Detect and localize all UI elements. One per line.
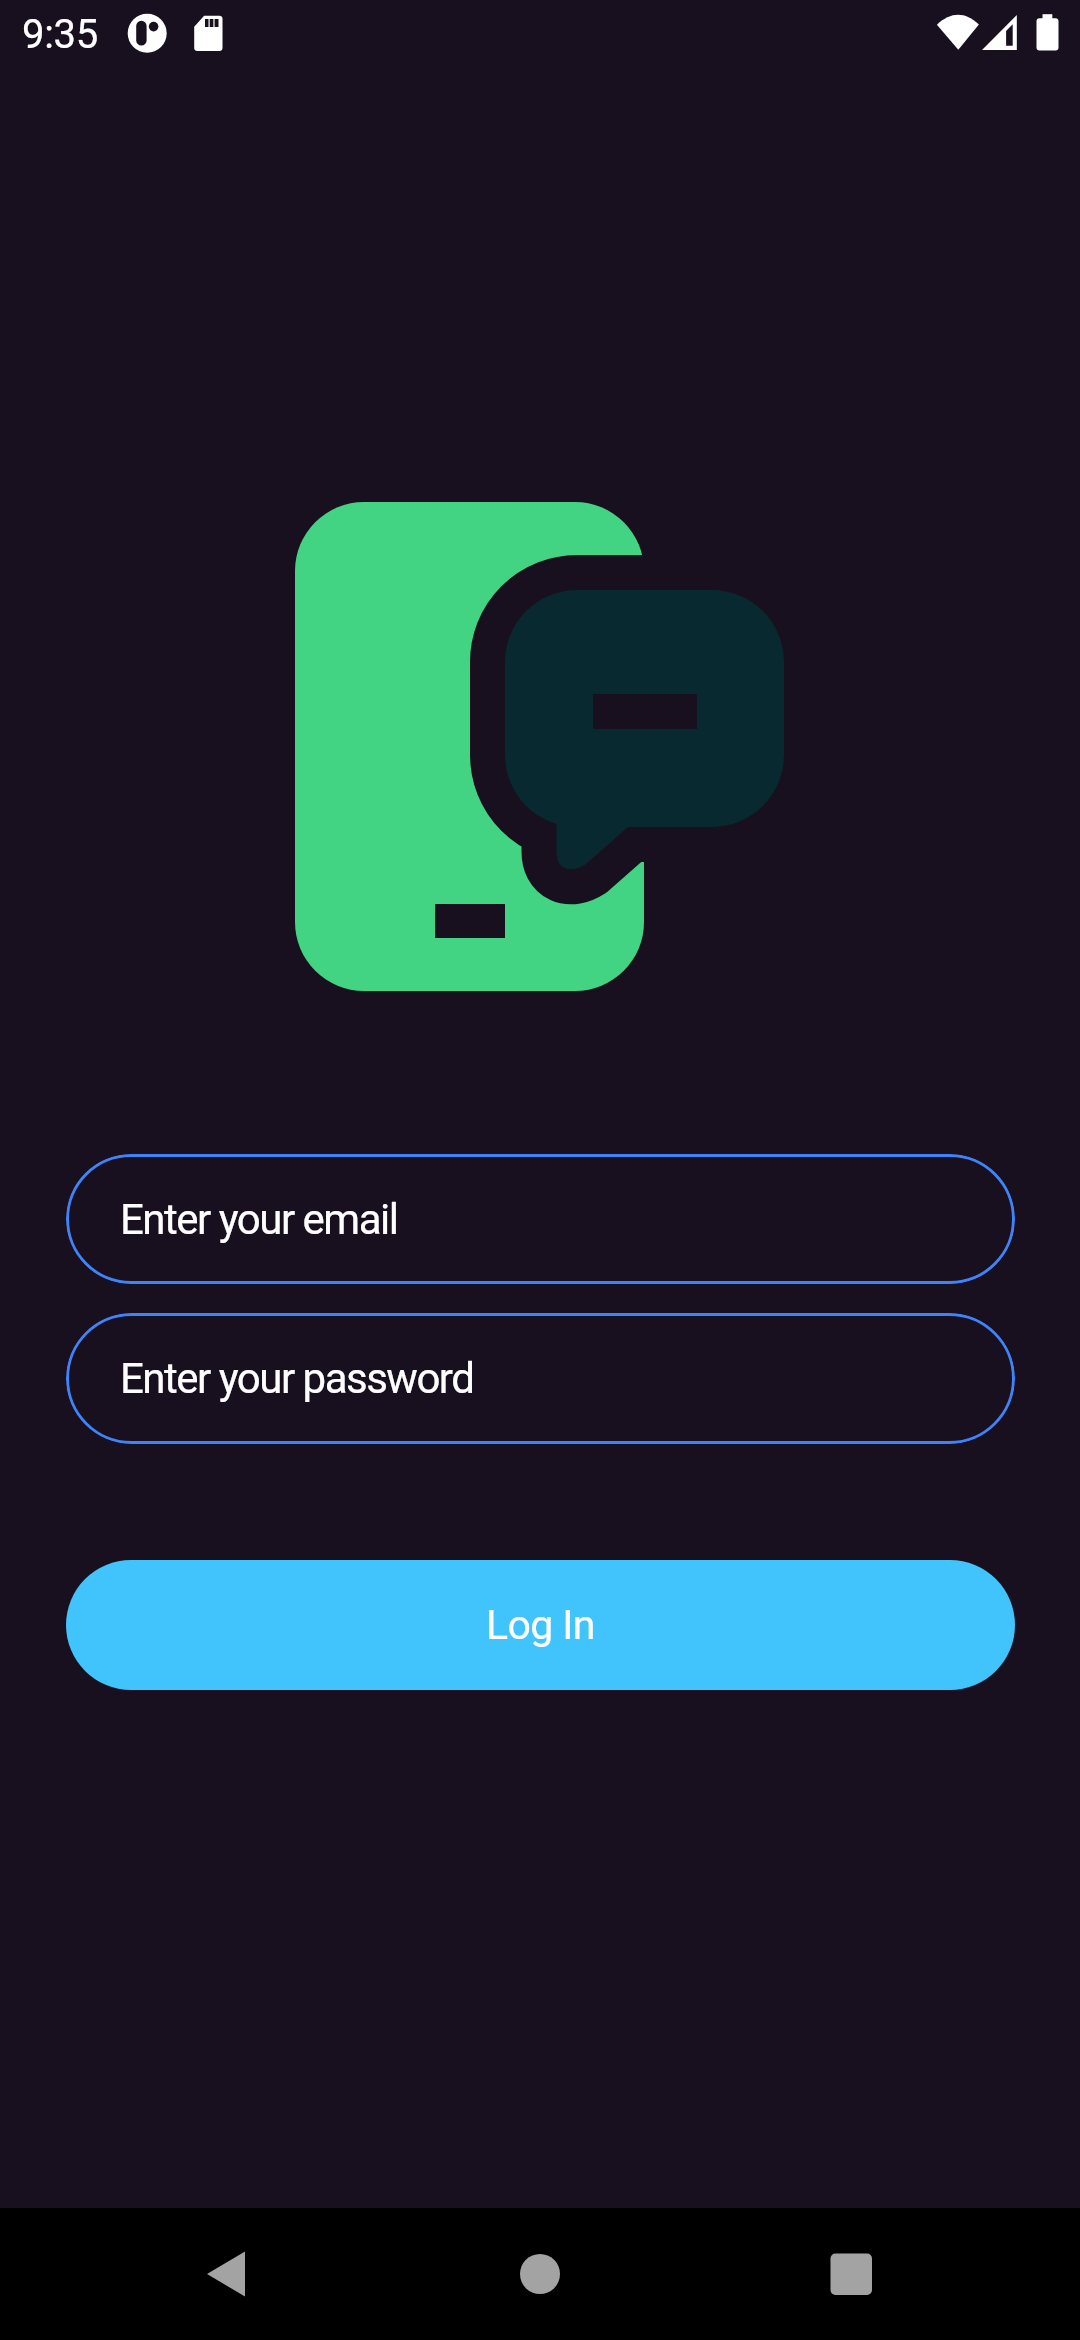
button[interactable]: Enter your email <box>66 1154 1015 1284</box>
staticText: Enter your email <box>120 1195 398 1244</box>
button[interactable]: Recent apps <box>805 2233 897 2315</box>
button[interactable]: Back <box>180 2233 272 2315</box>
button[interactable]: Log In <box>66 1560 1015 1690</box>
button[interactable]: Enter your password <box>66 1313 1015 1444</box>
staticText: 9:35 <box>22 11 98 58</box>
staticText: Log In <box>486 1601 595 1649</box>
staticText: Enter your password <box>120 1354 474 1403</box>
button[interactable]: Home <box>494 2233 586 2315</box>
